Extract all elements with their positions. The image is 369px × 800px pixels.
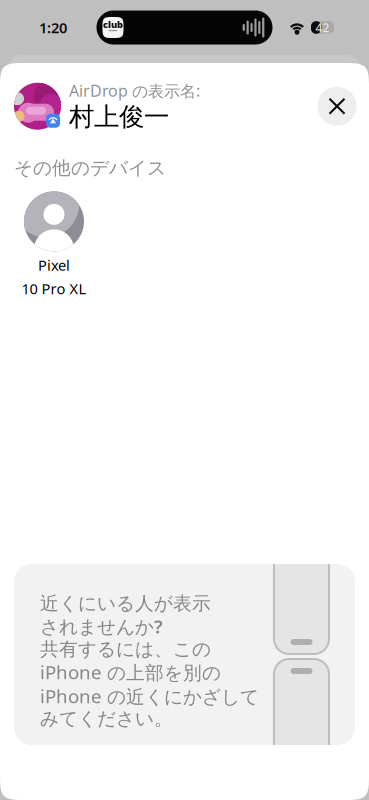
- staticText: 42: [315, 19, 329, 35]
- button[interactable]: Pixel: [7, 191, 101, 298]
- staticText: されませんか?: [40, 614, 163, 639]
- staticText: 近くにいる人が表示: [40, 592, 211, 615]
- staticText: club: [103, 18, 123, 30]
- staticText: AirDrop の表示名:: [69, 80, 200, 101]
- staticText: iPhone の近くにかざして: [40, 683, 259, 708]
- staticText: 1:20: [39, 18, 67, 37]
- staticText: 村上俊一: [69, 101, 169, 132]
- staticText: その他のデバイス: [14, 156, 166, 179]
- staticText: みてください。: [40, 707, 173, 730]
- button[interactable]: 閉じる: [312, 81, 362, 131]
- staticText: iPhone の上部を別の: [40, 660, 221, 684]
- staticText: Pixel: [38, 255, 70, 275]
- staticText: 10 Pro XL: [21, 279, 86, 298]
- staticText: 共有するには、この: [40, 638, 211, 661]
